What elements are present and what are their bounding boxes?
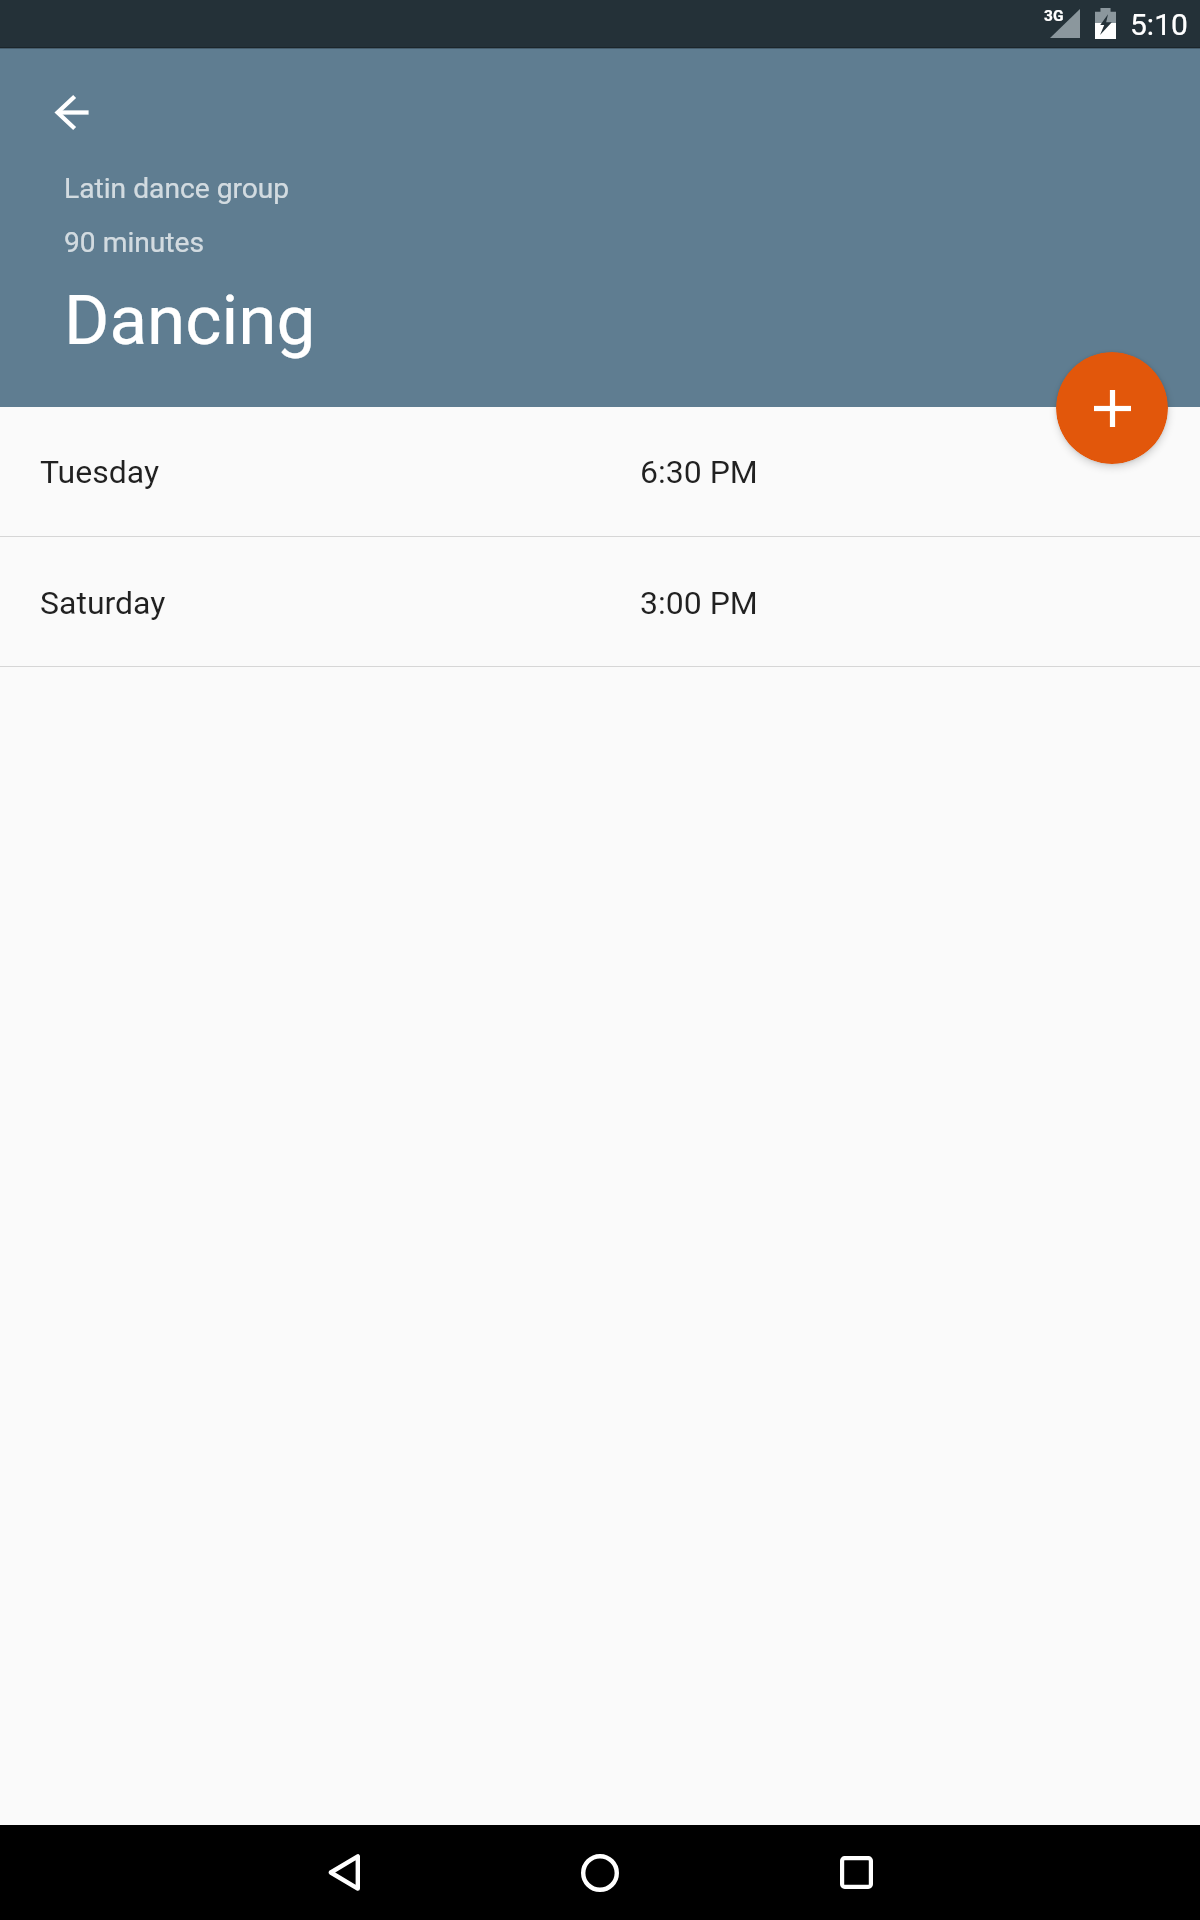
staticText: Tuesday <box>40 453 160 491</box>
staticText: 5:10 <box>1130 7 1188 42</box>
button[interactable]: Saturday <box>0 538 1200 667</box>
button[interactable]: Tuesday <box>0 407 1200 536</box>
staticText: Dancing <box>64 280 316 361</box>
button[interactable]: Recent apps <box>808 1825 904 1920</box>
staticText: 90 minutes <box>64 226 205 259</box>
button[interactable]: Add <box>1056 352 1168 464</box>
staticText: Saturday <box>40 584 166 622</box>
button[interactable]: Back <box>296 1825 392 1920</box>
button[interactable]: Navigate up <box>40 80 104 144</box>
staticText: 3G <box>1044 7 1064 25</box>
staticText: 3:00 PM <box>640 584 758 622</box>
button[interactable]: Home <box>552 1825 648 1920</box>
staticText: Latin dance group <box>64 172 290 205</box>
staticText: 6:30 PM <box>640 453 758 491</box>
